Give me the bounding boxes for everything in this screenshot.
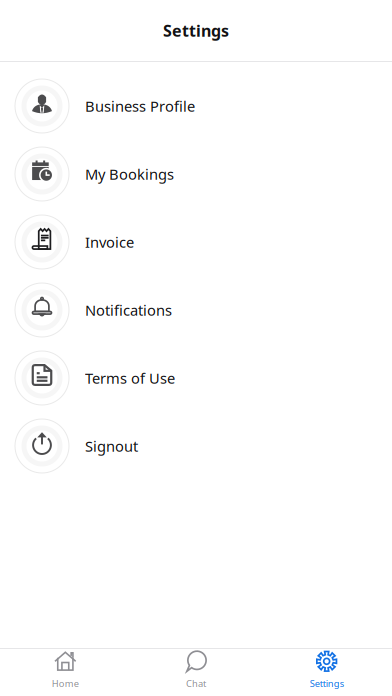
button[interactable]: Terms of Use [0,344,392,412]
staticText: Invoice [85,232,134,252]
staticText: Signout [85,436,138,456]
button[interactable]: My Bookings [0,140,392,208]
staticText: Business Profile [85,96,195,116]
staticText: Settings [163,20,229,41]
staticText: Notifications [85,300,172,320]
button[interactable]: Home [0,649,131,696]
button[interactable]: Notifications [0,276,392,344]
staticText: Terms of Use [85,368,175,388]
staticText: Home [52,677,79,690]
button[interactable]: Settings [261,649,392,696]
button[interactable]: Signout [0,412,392,480]
button[interactable]: Invoice [0,208,392,276]
staticText: My Bookings [85,164,174,184]
staticText: Chat [186,677,206,690]
button[interactable]: Chat [131,649,261,696]
button[interactable]: Business Profile [0,72,392,140]
staticText: Settings [310,677,344,690]
